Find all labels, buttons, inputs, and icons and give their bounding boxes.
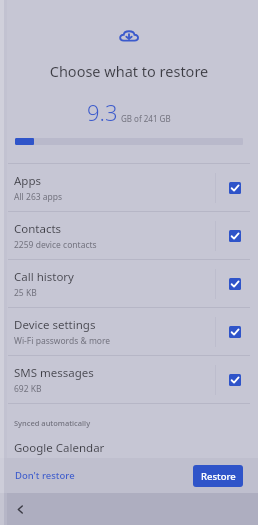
staticText: SMS messages	[14, 365, 94, 381]
button[interactable]: Apps	[0, 164, 258, 211]
staticText: 692 KB	[14, 383, 42, 395]
button[interactable]: Device settings	[0, 308, 258, 355]
staticText: All 263 apps	[14, 191, 63, 203]
button[interactable]: Don't restore	[8, 464, 82, 487]
button[interactable]: Contacts	[0, 212, 258, 259]
button[interactable]: Back	[8, 497, 32, 521]
staticText: Choose what to restore	[0, 61, 258, 81]
staticText: Don't restore	[15, 469, 75, 482]
staticText: Call history	[14, 269, 74, 285]
button[interactable]: SMS messages	[0, 356, 258, 403]
button[interactable]: Selected	[229, 278, 241, 290]
button[interactable]: Selected	[229, 374, 241, 386]
button[interactable]: Call history	[0, 260, 258, 307]
button[interactable]: Selected	[229, 326, 241, 338]
staticText: 2259 device contacts	[14, 239, 97, 251]
staticText: Device settings	[14, 317, 96, 333]
staticText: Restore	[201, 470, 236, 483]
staticText: 9.3	[87, 97, 118, 127]
staticText: GB of 241 GB	[121, 113, 171, 124]
button[interactable]: Selected	[229, 230, 241, 242]
staticText: Contacts	[14, 221, 62, 237]
staticText: Google Calendar	[14, 440, 105, 456]
button[interactable]: Selected	[229, 182, 241, 194]
staticText: Wi-Fi passwords & more	[14, 335, 111, 347]
staticText: 25 KB	[14, 287, 37, 299]
button[interactable]: Restore	[193, 465, 243, 487]
staticText: Apps	[14, 173, 42, 189]
staticText: Synced automatically	[14, 418, 91, 428]
